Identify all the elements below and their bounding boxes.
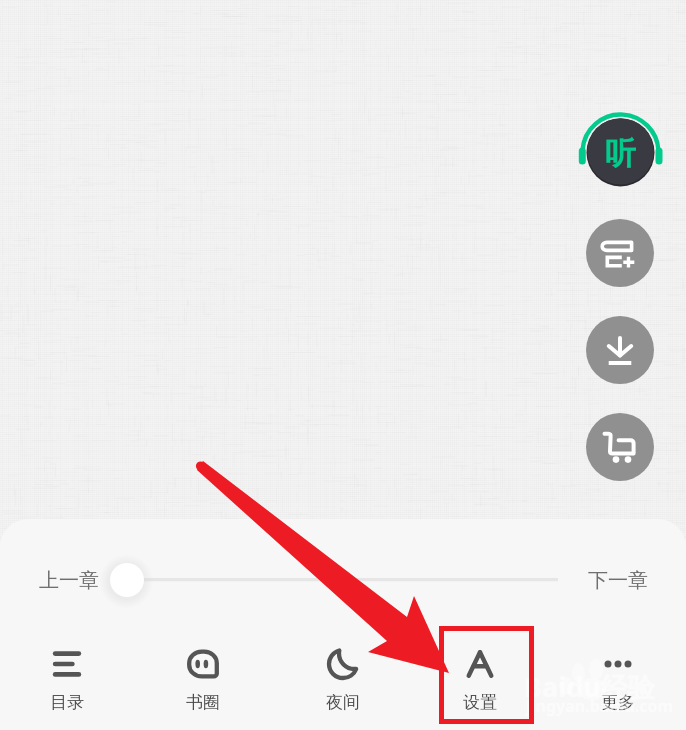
staticText: jingyan.baidu.com bbox=[526, 695, 674, 717]
button[interactable]: 更多 bbox=[549, 626, 686, 730]
staticText: 目录 bbox=[50, 692, 84, 713]
staticText: 更多 bbox=[601, 692, 635, 713]
button[interactable]: Listen to book bbox=[574, 104, 668, 190]
button[interactable]: 书圈 bbox=[138, 626, 275, 730]
staticText: 上一章 bbox=[39, 568, 99, 593]
staticText: 设置 bbox=[463, 692, 497, 713]
button[interactable]: 夜间 bbox=[275, 626, 412, 730]
staticText: Baidu经验 bbox=[524, 668, 655, 705]
staticText: 下一章 bbox=[588, 568, 648, 593]
staticText: 夜间 bbox=[326, 692, 360, 713]
button[interactable]: 目录 bbox=[0, 626, 138, 730]
button[interactable]: Shopping cart bbox=[586, 413, 654, 481]
button[interactable]: 下一章 bbox=[588, 568, 648, 593]
button[interactable]: Download bbox=[586, 316, 654, 384]
button[interactable]: Add to bookshelf bbox=[586, 219, 654, 287]
button[interactable]: Reading progress bbox=[110, 563, 144, 597]
button[interactable]: 上一章 bbox=[39, 568, 99, 593]
staticText: 书圈 bbox=[186, 692, 220, 713]
button[interactable]: 设置 bbox=[412, 626, 549, 730]
staticText: 听 bbox=[605, 134, 636, 173]
